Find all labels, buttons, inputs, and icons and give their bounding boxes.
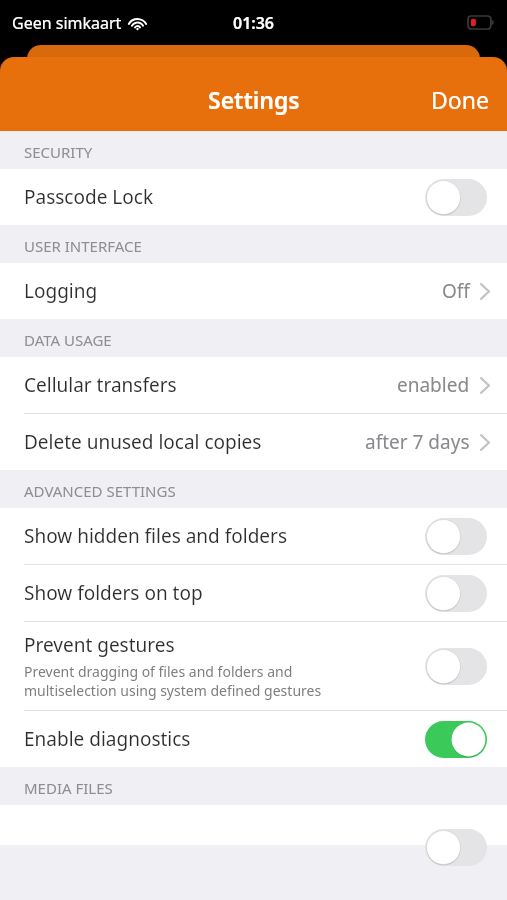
button[interactable]: Enable diagnostics (0, 711, 507, 767)
staticText: Settings (208, 84, 300, 115)
staticText: Delete unused local copies (24, 429, 262, 455)
staticText: Enable diagnostics (24, 726, 191, 752)
staticText: Off (442, 278, 470, 304)
button[interactable]: Logging (0, 263, 507, 319)
staticText: Cellular transfers (24, 372, 177, 398)
staticText: 01:36 (233, 12, 275, 34)
staticText: Prevent dragging of files and folders an… (24, 662, 322, 700)
button[interactable]: Cellular transfers (0, 357, 507, 413)
staticText: after 7 days (365, 429, 470, 455)
staticText: Geen simkaart (12, 12, 122, 34)
staticText: USER INTERFACE (24, 236, 142, 256)
staticText: MEDIA FILES (24, 778, 113, 798)
button[interactable]: Toggle off (422, 573, 490, 613)
staticText: Show hidden files and folders (24, 523, 287, 549)
button[interactable]: Prevent gestures (0, 622, 507, 710)
button[interactable]: Toggle off (422, 516, 490, 556)
staticText: ADVANCED SETTINGS (24, 481, 176, 501)
button[interactable]: Toggle off (422, 827, 490, 867)
button[interactable]: Show hidden files and folders (0, 508, 507, 564)
button[interactable]: Passcode Lock (0, 169, 507, 225)
staticText: SECURITY (24, 142, 93, 162)
staticText: enabled (397, 372, 470, 398)
staticText: Prevent gestures (24, 632, 175, 658)
button[interactable]: Delete unused local copies (0, 414, 507, 470)
staticText: Done (431, 84, 489, 115)
button[interactable]: Toggle off (422, 646, 490, 686)
staticText: Show folders on top (24, 580, 203, 606)
button[interactable]: Toggle on (422, 719, 490, 759)
button[interactable]: Toggle off (422, 177, 490, 217)
button[interactable]: Show folders on top (0, 565, 507, 621)
staticText: Logging (24, 278, 98, 304)
button[interactable]: Done (413, 76, 507, 123)
staticText: Passcode Lock (24, 184, 154, 210)
staticText: DATA USAGE (24, 330, 112, 350)
button[interactable]: Toggle off (0, 805, 507, 845)
